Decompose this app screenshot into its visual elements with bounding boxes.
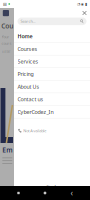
button[interactable]: Recents [10, 186, 26, 199]
button[interactable]: Not Available [14, 126, 90, 135]
button[interactable]: Search... [14, 17, 90, 25]
staticText: About Us [17, 83, 39, 90]
staticText: Pricing [17, 70, 33, 78]
staticText: ▤ [3, 2, 7, 6]
button[interactable]: Services [14, 55, 90, 68]
staticText: Cou [1, 21, 13, 30]
staticText: Courses [17, 45, 37, 52]
staticText: Home [17, 33, 32, 40]
staticText: Search... [20, 19, 35, 24]
staticText: Your [2, 34, 10, 39]
staticText: CyberCodez_In [17, 108, 53, 115]
button[interactable]: Close menu [81, 9, 88, 16]
button[interactable]: Contact us [14, 93, 90, 106]
staticText: Contact Us [42, 192, 61, 197]
staticText: ◔ ▪ ▮ [77, 2, 87, 6]
staticText: Contact us [17, 96, 43, 103]
button[interactable]: Contact Us [14, 190, 90, 198]
button[interactable]: About Us [14, 80, 90, 93]
staticText: Not Available [23, 128, 46, 133]
button[interactable]: Home [37, 186, 53, 199]
button[interactable]: Home [14, 30, 90, 43]
staticText: Sign In [46, 184, 57, 189]
staticText: HERE [2, 49, 11, 55]
staticText: cours [2, 41, 12, 46]
staticText: Em [2, 145, 12, 154]
staticText: Services [17, 58, 38, 65]
staticText: ‹ [70, 188, 72, 198]
button[interactable]: Pricing [14, 68, 90, 80]
button[interactable]: Sign In [14, 183, 90, 190]
button[interactable]: Back [63, 186, 79, 199]
button[interactable]: Courses [14, 43, 90, 55]
button[interactable]: CyberCodez_In [14, 106, 90, 118]
